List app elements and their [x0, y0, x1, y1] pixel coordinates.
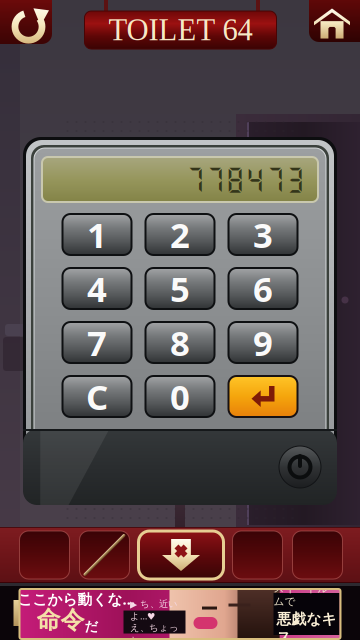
staticText: 7 [87, 319, 107, 365]
staticText: TOILET 64 [108, 13, 252, 47]
button[interactable]: 6 [228, 268, 297, 309]
staticText: C [86, 373, 108, 419]
button[interactable]: Empty inventory slot [19, 531, 69, 579]
staticText: 9 [253, 319, 273, 365]
staticText: え、ちょっと… [130, 622, 179, 640]
button[interactable]: Restart [0, 0, 57, 49]
button[interactable]: Item: iron rod [79, 531, 129, 579]
staticText: 0 [170, 373, 190, 419]
button[interactable]: 9 [228, 322, 297, 363]
button[interactable]: 8 [145, 322, 214, 363]
button[interactable]: 4 [62, 268, 131, 309]
staticText: 1 [87, 211, 107, 257]
button[interactable]: C [62, 376, 131, 417]
button[interactable]: 2 [145, 214, 214, 255]
staticText: 4 [87, 265, 107, 311]
staticText: ここから動くな… [17, 589, 135, 609]
staticText: ▶ ち、近いよ…♥ [130, 598, 178, 622]
staticText: だ [84, 618, 98, 635]
button[interactable]: Empty inventory slot [232, 531, 282, 579]
staticText: 778473 [185, 163, 305, 196]
staticText: 5 [170, 265, 190, 311]
staticText: スイートルームで [273, 582, 339, 608]
button[interactable]: Enter [228, 376, 297, 417]
staticText: 8 [170, 319, 190, 365]
button[interactable]: 7 [62, 322, 131, 363]
staticText: 命令 [36, 605, 84, 635]
button[interactable]: 5 [145, 268, 214, 309]
button[interactable]: 0 [145, 376, 214, 417]
staticText: 2 [170, 211, 190, 257]
button[interactable]: Advertisement: 悪戯なキス [0, 586, 360, 640]
staticText: 悪戯なキス [276, 610, 336, 640]
button[interactable]: Empty inventory slot [292, 531, 342, 579]
button[interactable]: Put away item [138, 531, 223, 579]
button[interactable]: 3 [228, 214, 297, 255]
staticText: 6 [253, 265, 273, 311]
button[interactable]: Home [304, 0, 360, 47]
staticText: 3 [253, 211, 273, 257]
button[interactable]: Power [279, 446, 321, 488]
button[interactable]: 1 [62, 214, 131, 255]
